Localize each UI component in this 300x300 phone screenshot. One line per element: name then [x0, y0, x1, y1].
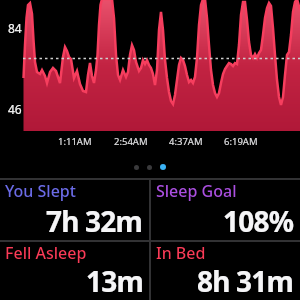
staticText: 108% — [223, 202, 294, 240]
staticText: In Bed — [156, 242, 206, 264]
staticText: Fell Asleep — [5, 242, 87, 264]
staticText: 46 — [8, 101, 22, 117]
staticText: 1:11AM — [58, 135, 92, 148]
staticText: 84 — [8, 20, 22, 36]
staticText: 13m — [86, 262, 143, 300]
staticText: 4:37AM — [169, 135, 203, 148]
staticText: 7h 32m — [46, 202, 143, 240]
staticText: 6:19AM — [224, 135, 258, 148]
button[interactable]: In Bed — [151, 242, 300, 300]
staticText: 8h 31m — [197, 262, 294, 300]
staticText: You Slept — [5, 180, 76, 202]
button[interactable]: Sleep Goal — [151, 180, 300, 240]
button[interactable]: You Slept — [0, 180, 149, 240]
staticText: Sleep Goal — [156, 180, 237, 202]
button[interactable]: Fell Asleep — [0, 242, 149, 300]
staticText: 2:54AM — [114, 135, 148, 148]
